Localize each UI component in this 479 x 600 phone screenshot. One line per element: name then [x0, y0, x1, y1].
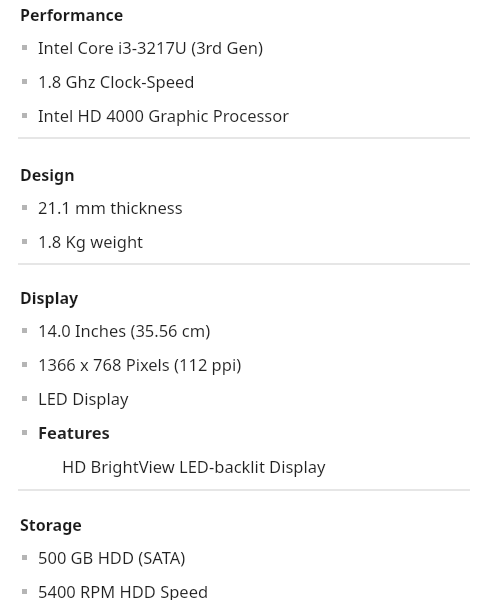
staticText: Intel Core i3-3217U (3rd Gen)	[38, 36, 263, 58]
button[interactable]: Performance	[0, 0, 479, 30]
button[interactable]: Features	[0, 415, 479, 449]
button[interactable]: 1.8 Kg weight	[0, 224, 479, 258]
button[interactable]: Display	[0, 283, 479, 313]
staticText: Design	[20, 164, 75, 186]
staticText: 5400 RPM HDD Speed	[38, 580, 209, 600]
staticText: LED Display	[38, 387, 129, 409]
button[interactable]: 21.1 mm thickness	[0, 190, 479, 224]
button[interactable]: 1.8 Ghz Clock-Speed	[0, 64, 479, 98]
button[interactable]: Intel HD 4000 Graphic Processor	[0, 98, 479, 132]
staticText: 21.1 mm thickness	[38, 196, 183, 218]
staticText: 1.8 Ghz Clock-Speed	[38, 70, 195, 92]
staticText: 500 GB HDD (SATA)	[38, 546, 186, 568]
button[interactable]: Design	[0, 160, 479, 190]
staticText: Storage	[20, 514, 82, 536]
staticText: 14.0 Inches (35.56 cm)	[38, 319, 211, 341]
staticText: HD BrightView LED-backlit Display	[62, 455, 326, 477]
staticText: Features	[38, 421, 110, 443]
button[interactable]: HD BrightView LED-backlit Display	[0, 449, 479, 483]
staticText: Performance	[20, 4, 124, 26]
staticText: Intel HD 4000 Graphic Processor	[38, 104, 290, 126]
button[interactable]: Intel Core i3-3217U (3rd Gen)	[0, 30, 479, 64]
button[interactable]: 1366 x 768 Pixels (112 ppi)	[0, 347, 479, 381]
staticText: Display	[20, 287, 79, 309]
button[interactable]: 500 GB HDD (SATA)	[0, 540, 479, 574]
button[interactable]: Storage	[0, 510, 479, 540]
staticText: 1366 x 768 Pixels (112 ppi)	[38, 353, 242, 375]
button[interactable]: 5400 RPM HDD Speed	[0, 574, 479, 600]
staticText: 1.8 Kg weight	[38, 230, 144, 252]
button[interactable]: LED Display	[0, 381, 479, 415]
button[interactable]: 14.0 Inches (35.56 cm)	[0, 313, 479, 347]
